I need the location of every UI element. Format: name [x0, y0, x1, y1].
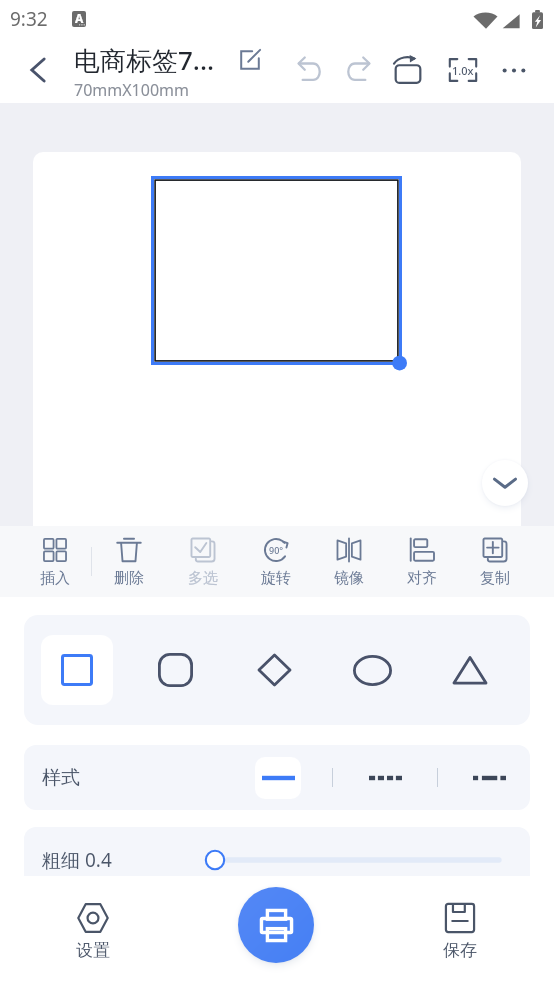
staticText: 删除: [114, 569, 144, 588]
staticText: 多选: [188, 569, 218, 588]
staticText: 90°: [269, 544, 284, 556]
button[interactable]: Line style: [362, 757, 408, 799]
staticText: 样式: [42, 766, 80, 790]
button[interactable]: 对齐: [385, 526, 458, 597]
button[interactable]: Redo: [335, 48, 379, 92]
button[interactable]: 插入: [18, 526, 92, 597]
staticText: 粗细 0.4: [42, 847, 112, 873]
staticText: 对齐: [407, 569, 437, 588]
button[interactable]: Shape option: [238, 635, 310, 705]
button[interactable]: 删除: [92, 526, 166, 597]
button[interactable]: Thickness slider: [205, 839, 509, 881]
button[interactable]: 多选: [166, 526, 239, 597]
button[interactable]: 镜像: [312, 526, 385, 597]
staticText: 9:32: [10, 6, 48, 32]
staticText: A: [75, 11, 84, 26]
button[interactable]: Rotate view: [386, 48, 430, 92]
button[interactable]: Zoom level 1.0x: [441, 48, 485, 92]
staticText: 设置: [76, 940, 110, 961]
staticText: 70mmX100mm: [74, 79, 189, 101]
button[interactable]: Rename: [235, 45, 265, 75]
button[interactable]: More options: [492, 48, 536, 92]
staticText: 复制: [480, 569, 510, 588]
staticText: 旋转: [261, 569, 291, 588]
button[interactable]: 保存: [420, 894, 500, 964]
staticText: 插入: [40, 569, 70, 588]
button[interactable]: Back: [17, 49, 59, 91]
button[interactable]: 复制: [458, 526, 531, 597]
button[interactable]: Shape option: [41, 635, 113, 705]
button[interactable]: 90°: [239, 526, 312, 597]
button[interactable]: Line style: [255, 757, 301, 799]
button[interactable]: Print: [238, 887, 314, 963]
button[interactable]: Undo: [289, 48, 333, 92]
staticText: 保存: [443, 940, 477, 961]
staticText: 电商标签7...: [74, 42, 215, 78]
staticText: 1.0x: [452, 63, 474, 78]
button[interactable]: Shape option: [139, 635, 211, 705]
button[interactable]: Collapse panel: [482, 460, 528, 506]
button[interactable]: 设置: [53, 894, 133, 964]
staticText: 镜像: [334, 569, 364, 588]
button[interactable]: Line style: [466, 757, 512, 799]
button[interactable]: Shape option: [336, 635, 408, 705]
button[interactable]: Shape option: [434, 635, 506, 705]
